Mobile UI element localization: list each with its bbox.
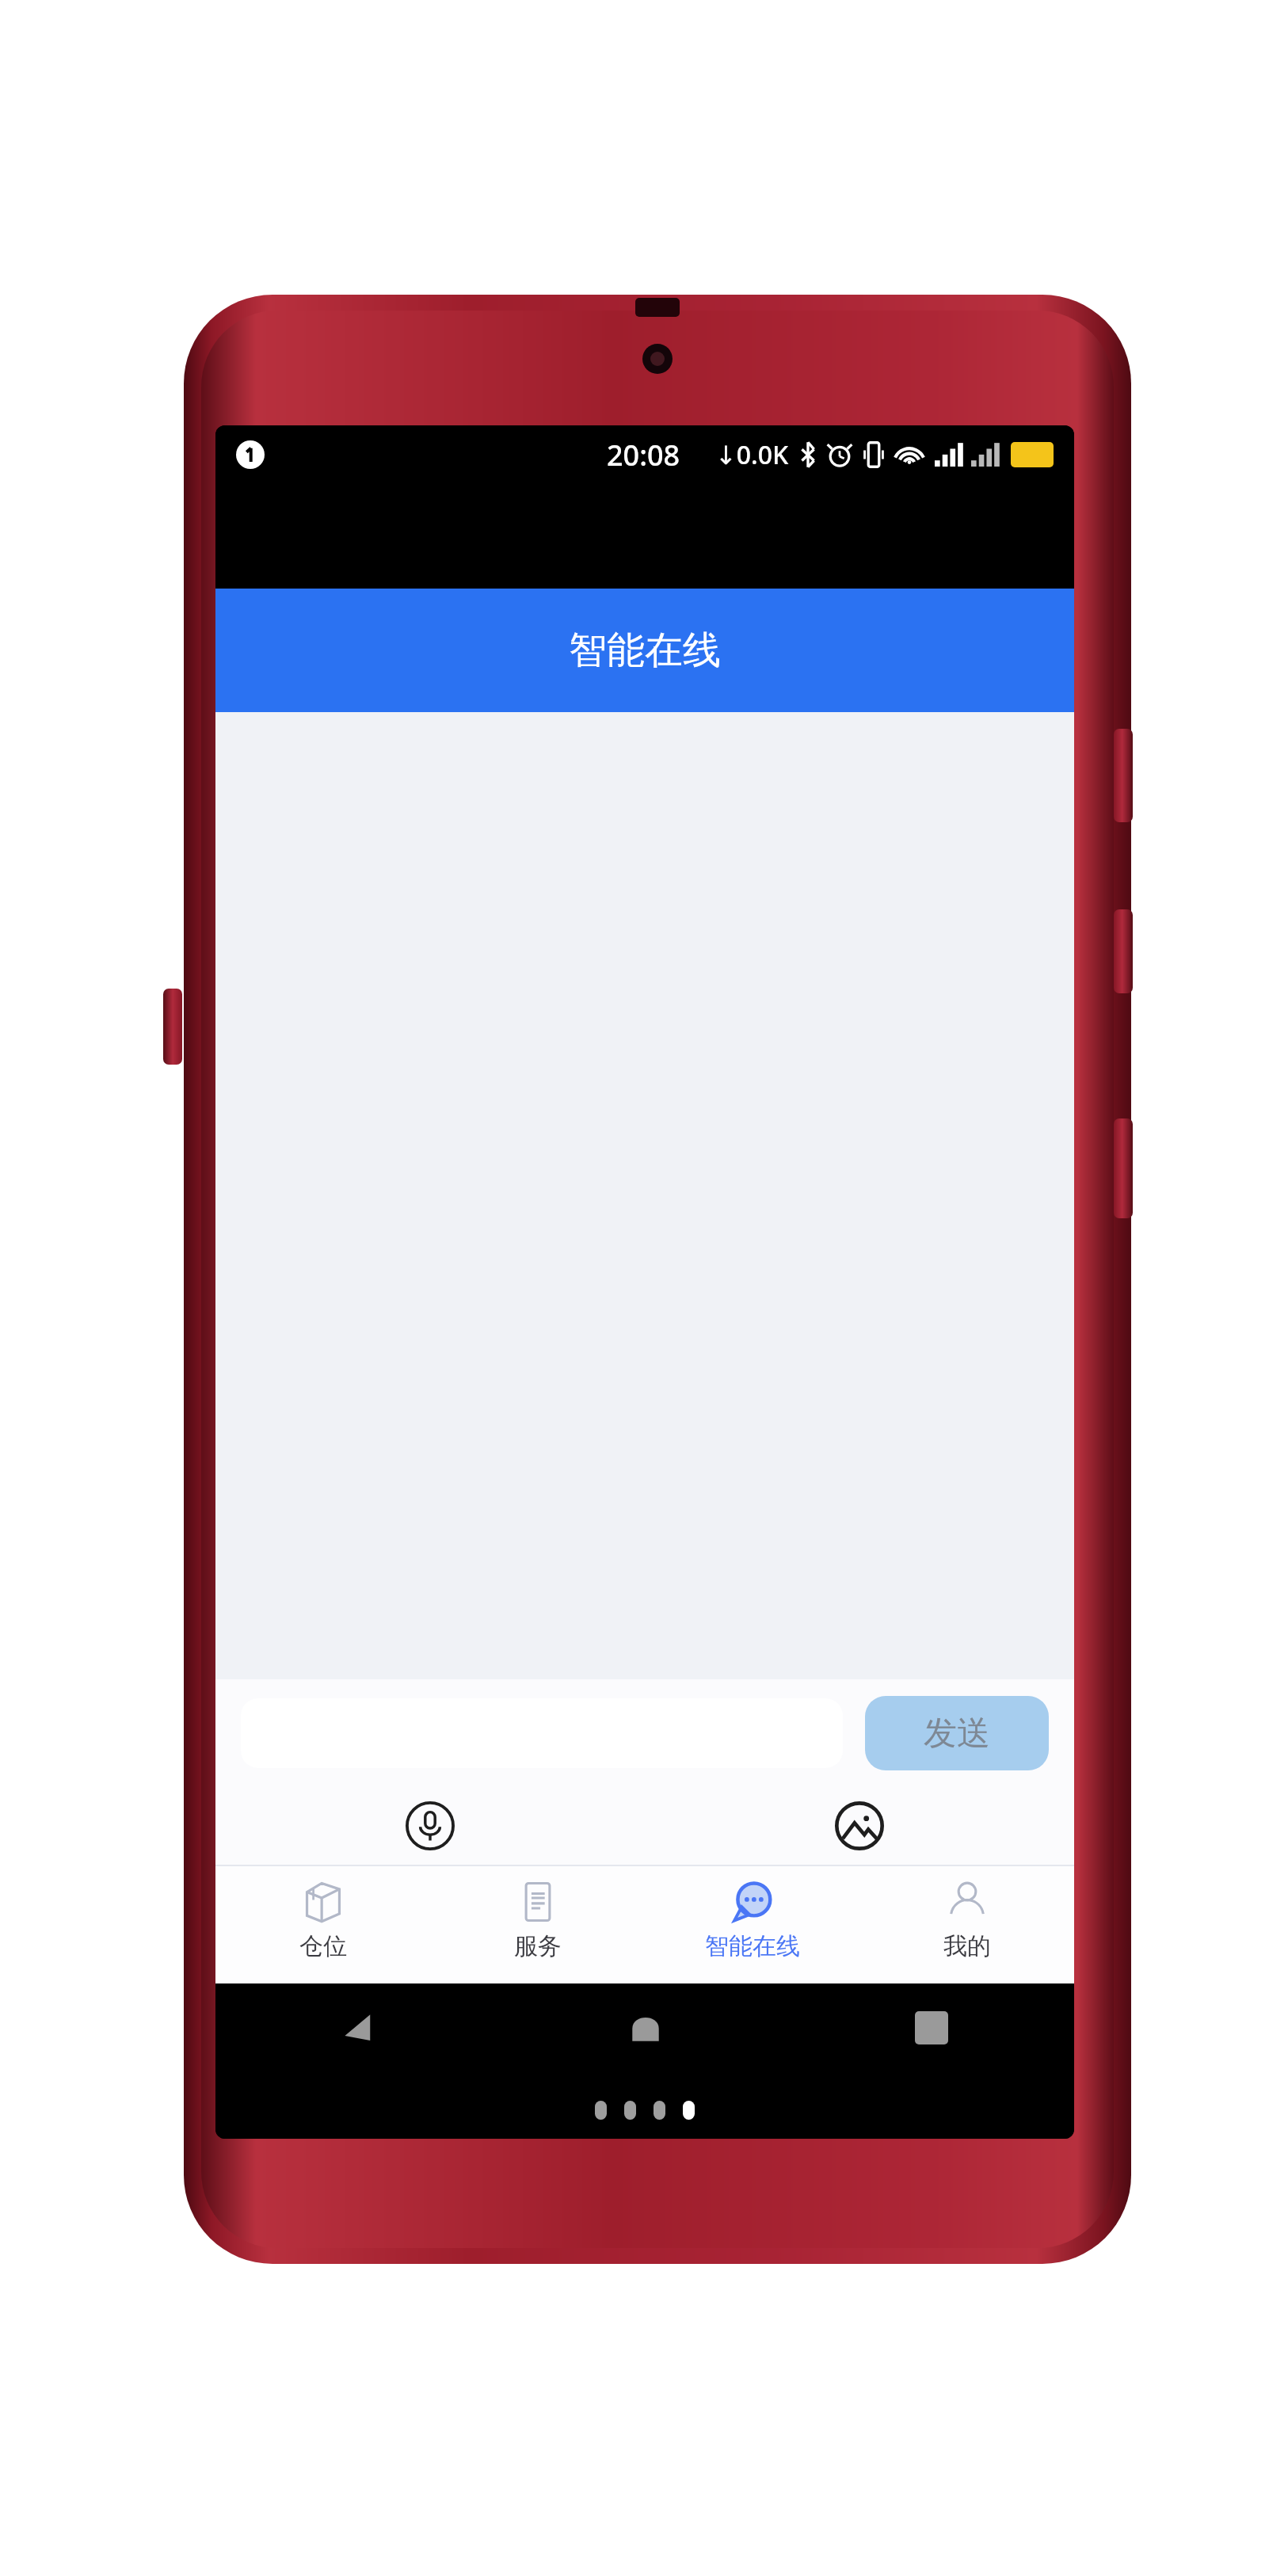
button[interactable]: 智能在线 — [645, 1865, 859, 1983]
staticText: 仓位 — [299, 1931, 347, 1961]
button[interactable]: 我的 — [859, 1865, 1074, 1983]
button[interactable]: Send image — [826, 1793, 893, 1859]
staticText: 服务 — [514, 1931, 562, 1961]
button[interactable]: Back — [322, 1991, 395, 2064]
staticText: 智能在线 — [569, 627, 721, 674]
staticText: 我的 — [943, 1931, 991, 1961]
button[interactable]: 服务 — [430, 1865, 645, 1983]
staticText: 20:08 — [607, 436, 680, 474]
button[interactable]: Home — [609, 1991, 682, 2064]
button[interactable]: 发送 — [865, 1696, 1049, 1770]
staticText: 发送 — [924, 1713, 990, 1755]
staticText: ↓0.0K — [715, 437, 789, 472]
button[interactable]: Voice input — [397, 1793, 463, 1859]
button[interactable]: Recents — [895, 1991, 968, 2064]
button[interactable]: 仓位 — [215, 1865, 430, 1983]
staticText: 智能在线 — [705, 1931, 800, 1961]
